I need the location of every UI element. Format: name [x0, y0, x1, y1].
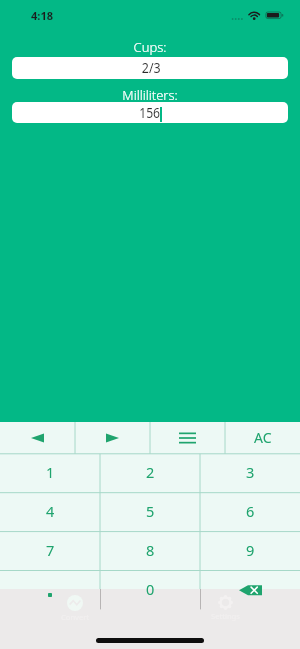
button[interactable]: Convert	[0, 589, 150, 629]
staticText: 3	[246, 462, 255, 482]
staticText: 4	[46, 501, 55, 521]
button[interactable]: 2	[100, 454, 200, 493]
staticText: 1	[46, 462, 55, 482]
button[interactable]: 0	[100, 571, 200, 610]
button[interactable]: Decimal point	[0, 571, 100, 610]
button[interactable]: 3	[200, 454, 300, 493]
button[interactable]: 9	[200, 532, 300, 571]
button[interactable]: 6	[200, 493, 300, 532]
staticText: Cups:	[0, 38, 300, 56]
staticText: AC	[254, 428, 272, 447]
button[interactable]: 2/3	[12, 57, 288, 79]
staticText: 5	[146, 501, 155, 521]
button[interactable]: 7	[0, 532, 100, 571]
staticText: 4:18	[31, 8, 53, 23]
button[interactable]: 8	[100, 532, 200, 571]
button[interactable]: AC	[225, 422, 300, 454]
button[interactable]: Settings	[150, 589, 300, 629]
button[interactable]: Previous	[0, 422, 75, 454]
staticText: Milliliters:	[0, 86, 300, 104]
button[interactable]: 1	[0, 454, 100, 493]
staticText: 6	[246, 501, 255, 521]
button[interactable]: Menu	[150, 422, 225, 454]
button[interactable]: Backspace	[200, 571, 300, 610]
button[interactable]: 156	[12, 102, 288, 123]
staticText: 156	[139, 103, 161, 121]
button[interactable]: 4	[0, 493, 100, 532]
button[interactable]: Next	[75, 422, 150, 454]
staticText: 0	[146, 579, 155, 599]
staticText: 2/3	[142, 58, 161, 76]
staticText: 2	[146, 462, 155, 482]
button[interactable]: 5	[100, 493, 200, 532]
staticText: 8	[146, 540, 155, 560]
staticText: 7	[46, 540, 55, 560]
staticText: 9	[246, 540, 255, 560]
